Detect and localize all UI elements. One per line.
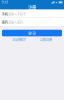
button[interactable]: 忘记密码？ [12,37,27,42]
staticText: 9:41 [2,0,9,4]
button[interactable]: 立即注册 [40,37,52,42]
staticText: 立即注册 [40,37,52,42]
button[interactable]: 登录 [2,30,62,36]
staticText: 忘记密码？ [12,37,27,42]
staticText: 密码 [2,20,8,25]
staticText: 登录 [28,30,36,36]
staticText: 请输入密码 [8,20,23,25]
staticText: 请输入手机号 [8,12,26,16]
staticText: 手机 [2,12,8,16]
staticText: 注册 [28,4,36,10]
